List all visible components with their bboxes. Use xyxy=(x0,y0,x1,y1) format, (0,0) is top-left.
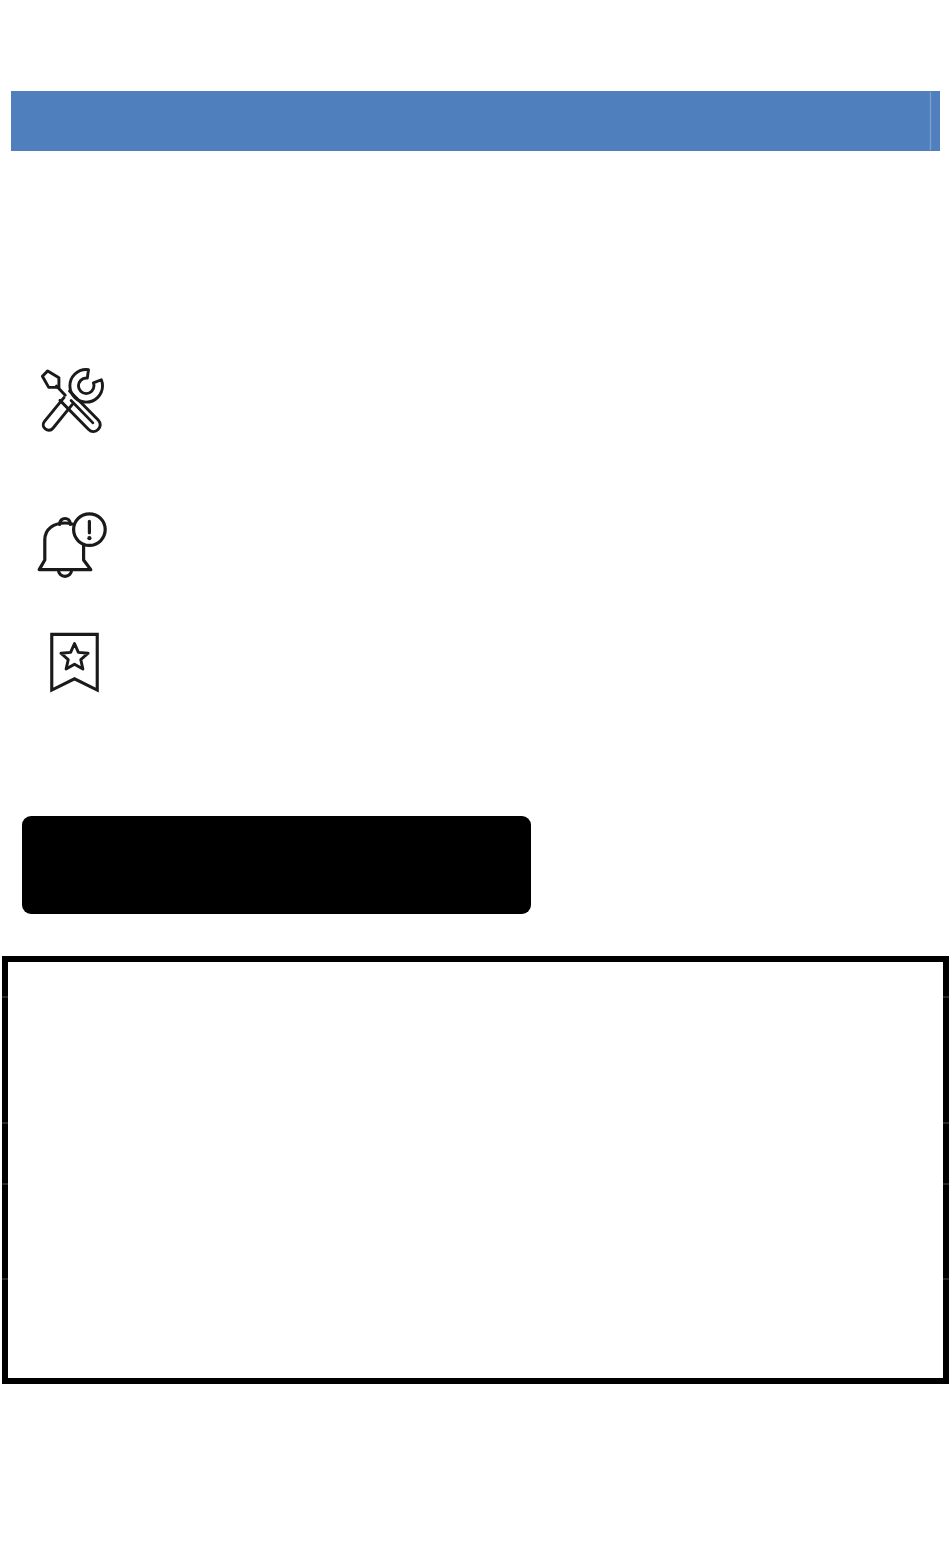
button[interactable] xyxy=(8,1279,943,1384)
button[interactable] xyxy=(22,816,531,914)
button[interactable] xyxy=(8,956,943,997)
button[interactable]: Bookmark xyxy=(50,632,99,692)
button[interactable]: Tools xyxy=(39,367,107,435)
button[interactable]: Alerts xyxy=(34,506,110,582)
